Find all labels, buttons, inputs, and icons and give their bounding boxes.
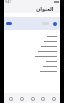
button[interactable] — [6, 22, 12, 25]
button[interactable]: Profile — [53, 22, 57, 26]
staticText: العنوان — [36, 6, 54, 12]
button[interactable]: Tab — [49, 94, 58, 103]
button[interactable]: Tab — [6, 94, 15, 103]
staticText: 9:41 — [5, 0, 11, 4]
button[interactable]: Tab — [28, 94, 37, 103]
button[interactable]: Tab — [17, 94, 26, 103]
button[interactable]: Tab — [38, 94, 47, 103]
